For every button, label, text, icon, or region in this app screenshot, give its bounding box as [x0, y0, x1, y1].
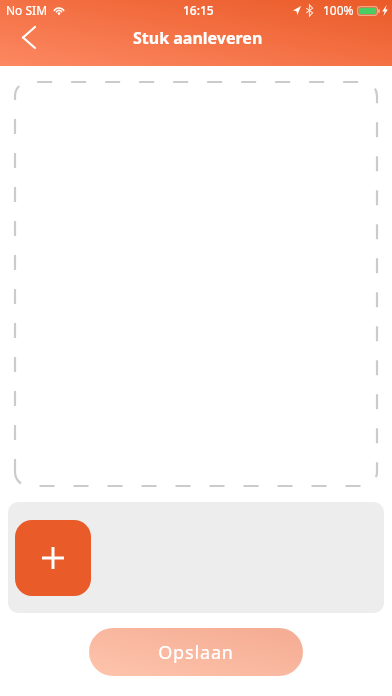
button[interactable]: Add item [15, 520, 91, 596]
staticText: Stuk aanleveren [133, 27, 263, 49]
staticText: Opslaan [158, 640, 234, 665]
staticText: No SIM [6, 2, 48, 18]
button[interactable]: Back [6, 15, 51, 60]
staticText: 16:15 [183, 2, 214, 18]
button[interactable]: Opslaan [89, 628, 303, 676]
button[interactable]: Add attachment [0, 66, 392, 502]
staticText: 100% [323, 2, 354, 18]
